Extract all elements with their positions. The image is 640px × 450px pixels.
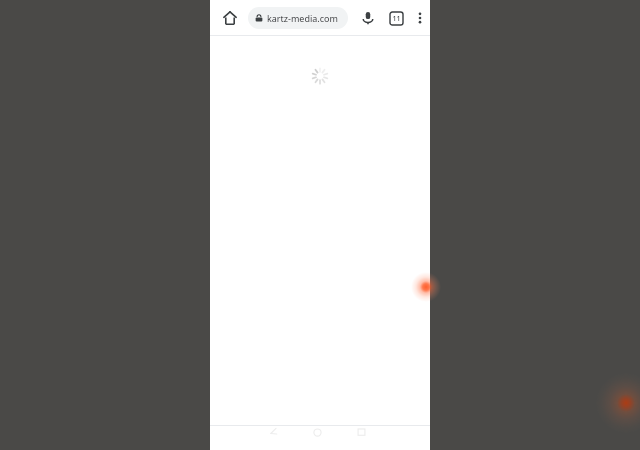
staticText: 11 (392, 14, 401, 24)
button[interactable]: kartz-media.com (248, 7, 348, 29)
button[interactable]: Switch tabs, 11 open (384, 6, 408, 30)
staticText: kartz-media.com (267, 12, 338, 24)
button[interactable]: Voice search (356, 6, 380, 30)
button[interactable]: Home (218, 6, 242, 30)
button[interactable]: Back (262, 426, 284, 437)
button[interactable]: More options (410, 6, 430, 30)
button[interactable]: Home (306, 426, 328, 437)
button[interactable]: Recent apps (350, 426, 372, 437)
